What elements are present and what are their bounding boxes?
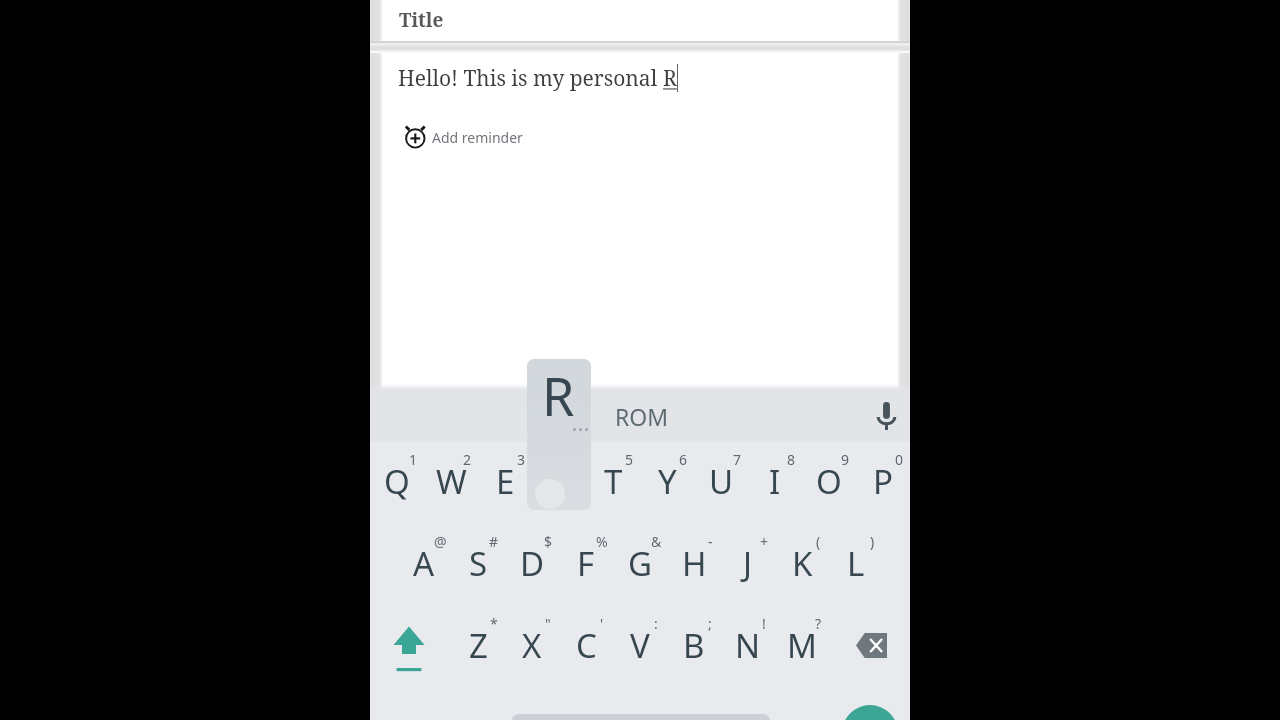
staticText: 5	[625, 450, 634, 469]
staticText: P	[873, 459, 893, 504]
staticText: &	[651, 532, 662, 551]
button[interactable]: E	[478, 443, 532, 525]
button[interactable]: Enter	[842, 705, 898, 720]
staticText: ;	[708, 614, 712, 633]
staticText: S	[469, 541, 488, 586]
staticText: $	[544, 532, 553, 551]
staticText: U	[709, 459, 734, 504]
button[interactable]: I	[748, 443, 802, 525]
staticText: %	[596, 532, 608, 551]
staticText: ?	[815, 614, 822, 633]
button[interactable]: V	[613, 607, 667, 689]
staticText: G	[628, 541, 653, 586]
button[interactable]: F	[559, 525, 613, 607]
staticText: '	[600, 614, 604, 633]
staticText: V	[630, 623, 650, 668]
staticText: @	[434, 532, 447, 551]
staticText: Title	[399, 7, 444, 33]
button[interactable]: R	[532, 443, 586, 525]
staticText: (	[816, 532, 821, 551]
staticText: :	[654, 614, 658, 633]
button[interactable]: P	[856, 443, 910, 525]
staticText: 1	[409, 450, 418, 469]
staticText: 6	[679, 450, 688, 469]
staticText: *	[490, 614, 498, 633]
button[interactable]: Y	[640, 443, 694, 525]
staticText: B	[683, 623, 705, 668]
staticText: 9	[841, 450, 850, 469]
button[interactable]: Q	[370, 443, 424, 525]
staticText: 3	[517, 450, 526, 469]
button[interactable]: Shift	[370, 607, 451, 689]
staticText: E	[496, 459, 515, 504]
staticText: 7	[733, 450, 742, 469]
button[interactable]: K	[775, 525, 829, 607]
button[interactable]: Add reminder	[403, 124, 523, 150]
staticText: #	[489, 532, 499, 551]
staticText: C	[576, 623, 597, 668]
staticText: ROM	[615, 401, 669, 432]
staticText: Hello! This is my personal	[398, 64, 663, 93]
staticText: J	[743, 541, 753, 586]
button[interactable]: J	[721, 525, 775, 607]
staticText: T	[604, 459, 623, 504]
staticText: R	[663, 64, 677, 93]
button[interactable]: G	[613, 525, 667, 607]
staticText: O	[816, 459, 842, 504]
button[interactable]: A	[397, 525, 451, 607]
staticText: 2	[463, 450, 472, 469]
button[interactable]: Z	[451, 607, 505, 689]
staticText: )	[870, 532, 875, 551]
button[interactable]: C	[559, 607, 613, 689]
staticText: A	[413, 541, 435, 586]
staticText: !	[762, 614, 766, 633]
staticText: 0	[895, 450, 904, 469]
staticText: Q	[384, 459, 410, 504]
button[interactable]: Space	[512, 714, 770, 720]
button[interactable]: Backspace	[829, 607, 910, 689]
button[interactable]: B	[667, 607, 721, 689]
staticText: X	[522, 623, 542, 668]
staticText: F	[577, 541, 595, 586]
button[interactable]: Voice input	[864, 394, 908, 438]
staticText: Add reminder	[432, 128, 523, 147]
staticText: Z	[469, 623, 488, 668]
staticText: D	[520, 541, 545, 586]
staticText: "	[545, 614, 551, 633]
staticText: R	[549, 459, 570, 504]
staticText: L	[847, 541, 865, 586]
button[interactable]: T	[586, 443, 640, 525]
button[interactable]: U	[694, 443, 748, 525]
staticText: M	[787, 623, 817, 668]
staticText: K	[792, 541, 813, 586]
button[interactable]: O	[802, 443, 856, 525]
staticText: R	[542, 360, 575, 431]
staticText: +	[760, 532, 769, 551]
button[interactable]: D	[505, 525, 559, 607]
staticText: I	[769, 459, 781, 504]
button[interactable]: L	[829, 525, 883, 607]
staticText: Y	[658, 459, 677, 504]
button[interactable]: H	[667, 525, 721, 607]
button[interactable]: M	[775, 607, 829, 689]
button[interactable]: W	[424, 443, 478, 525]
staticText: W	[436, 459, 467, 504]
button[interactable]: X	[505, 607, 559, 689]
staticText: H	[682, 541, 707, 586]
staticText: 8	[787, 450, 796, 469]
button[interactable]: S	[451, 525, 505, 607]
staticText: N	[735, 623, 761, 668]
button[interactable]: N	[721, 607, 775, 689]
staticText: -	[708, 532, 713, 551]
